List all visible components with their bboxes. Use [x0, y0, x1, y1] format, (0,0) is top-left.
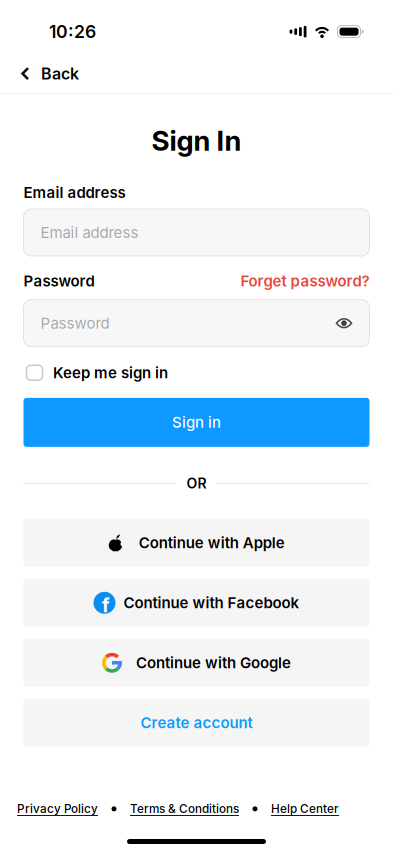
staticText: 10:26: [49, 21, 96, 42]
staticText: Continue with Facebook: [123, 594, 299, 612]
staticText: Privacy Policy: [17, 802, 98, 816]
staticText: OR: [186, 475, 206, 492]
staticText: Terms & Conditions: [130, 802, 239, 816]
staticText: Continue with Google: [136, 654, 291, 672]
staticText: Keep me sign in: [53, 364, 168, 382]
button[interactable]: Forget password?: [240, 272, 369, 290]
button[interactable]: Create account: [23, 699, 369, 747]
button[interactable]: Back: [21, 64, 79, 83]
staticText: Forget password?: [240, 272, 369, 290]
button[interactable]: Sign in: [23, 398, 369, 447]
staticText: Email address: [23, 183, 125, 201]
staticText: Sign in: [172, 413, 221, 431]
staticText: Email address: [40, 223, 138, 242]
button[interactable]: Keep me sign in: [26, 364, 168, 382]
staticText: Create account: [140, 714, 252, 732]
staticText: f: [102, 593, 110, 617]
staticText: Password: [23, 272, 94, 290]
staticText: Help Center: [271, 802, 339, 816]
button[interactable]: Help Center: [271, 802, 339, 816]
button[interactable]: f: [23, 579, 369, 627]
button[interactable]: Continue with Apple: [23, 519, 369, 567]
button[interactable]: Show password: [335, 310, 352, 337]
button[interactable]: Continue with Google: [23, 639, 369, 687]
staticText: Password: [40, 314, 109, 332]
button[interactable]: Privacy Policy: [17, 802, 98, 816]
staticText: Back: [41, 64, 79, 83]
staticText: Continue with Apple: [139, 534, 285, 552]
button[interactable]: Terms & Conditions: [130, 802, 239, 816]
staticText: Sign In: [151, 124, 241, 157]
